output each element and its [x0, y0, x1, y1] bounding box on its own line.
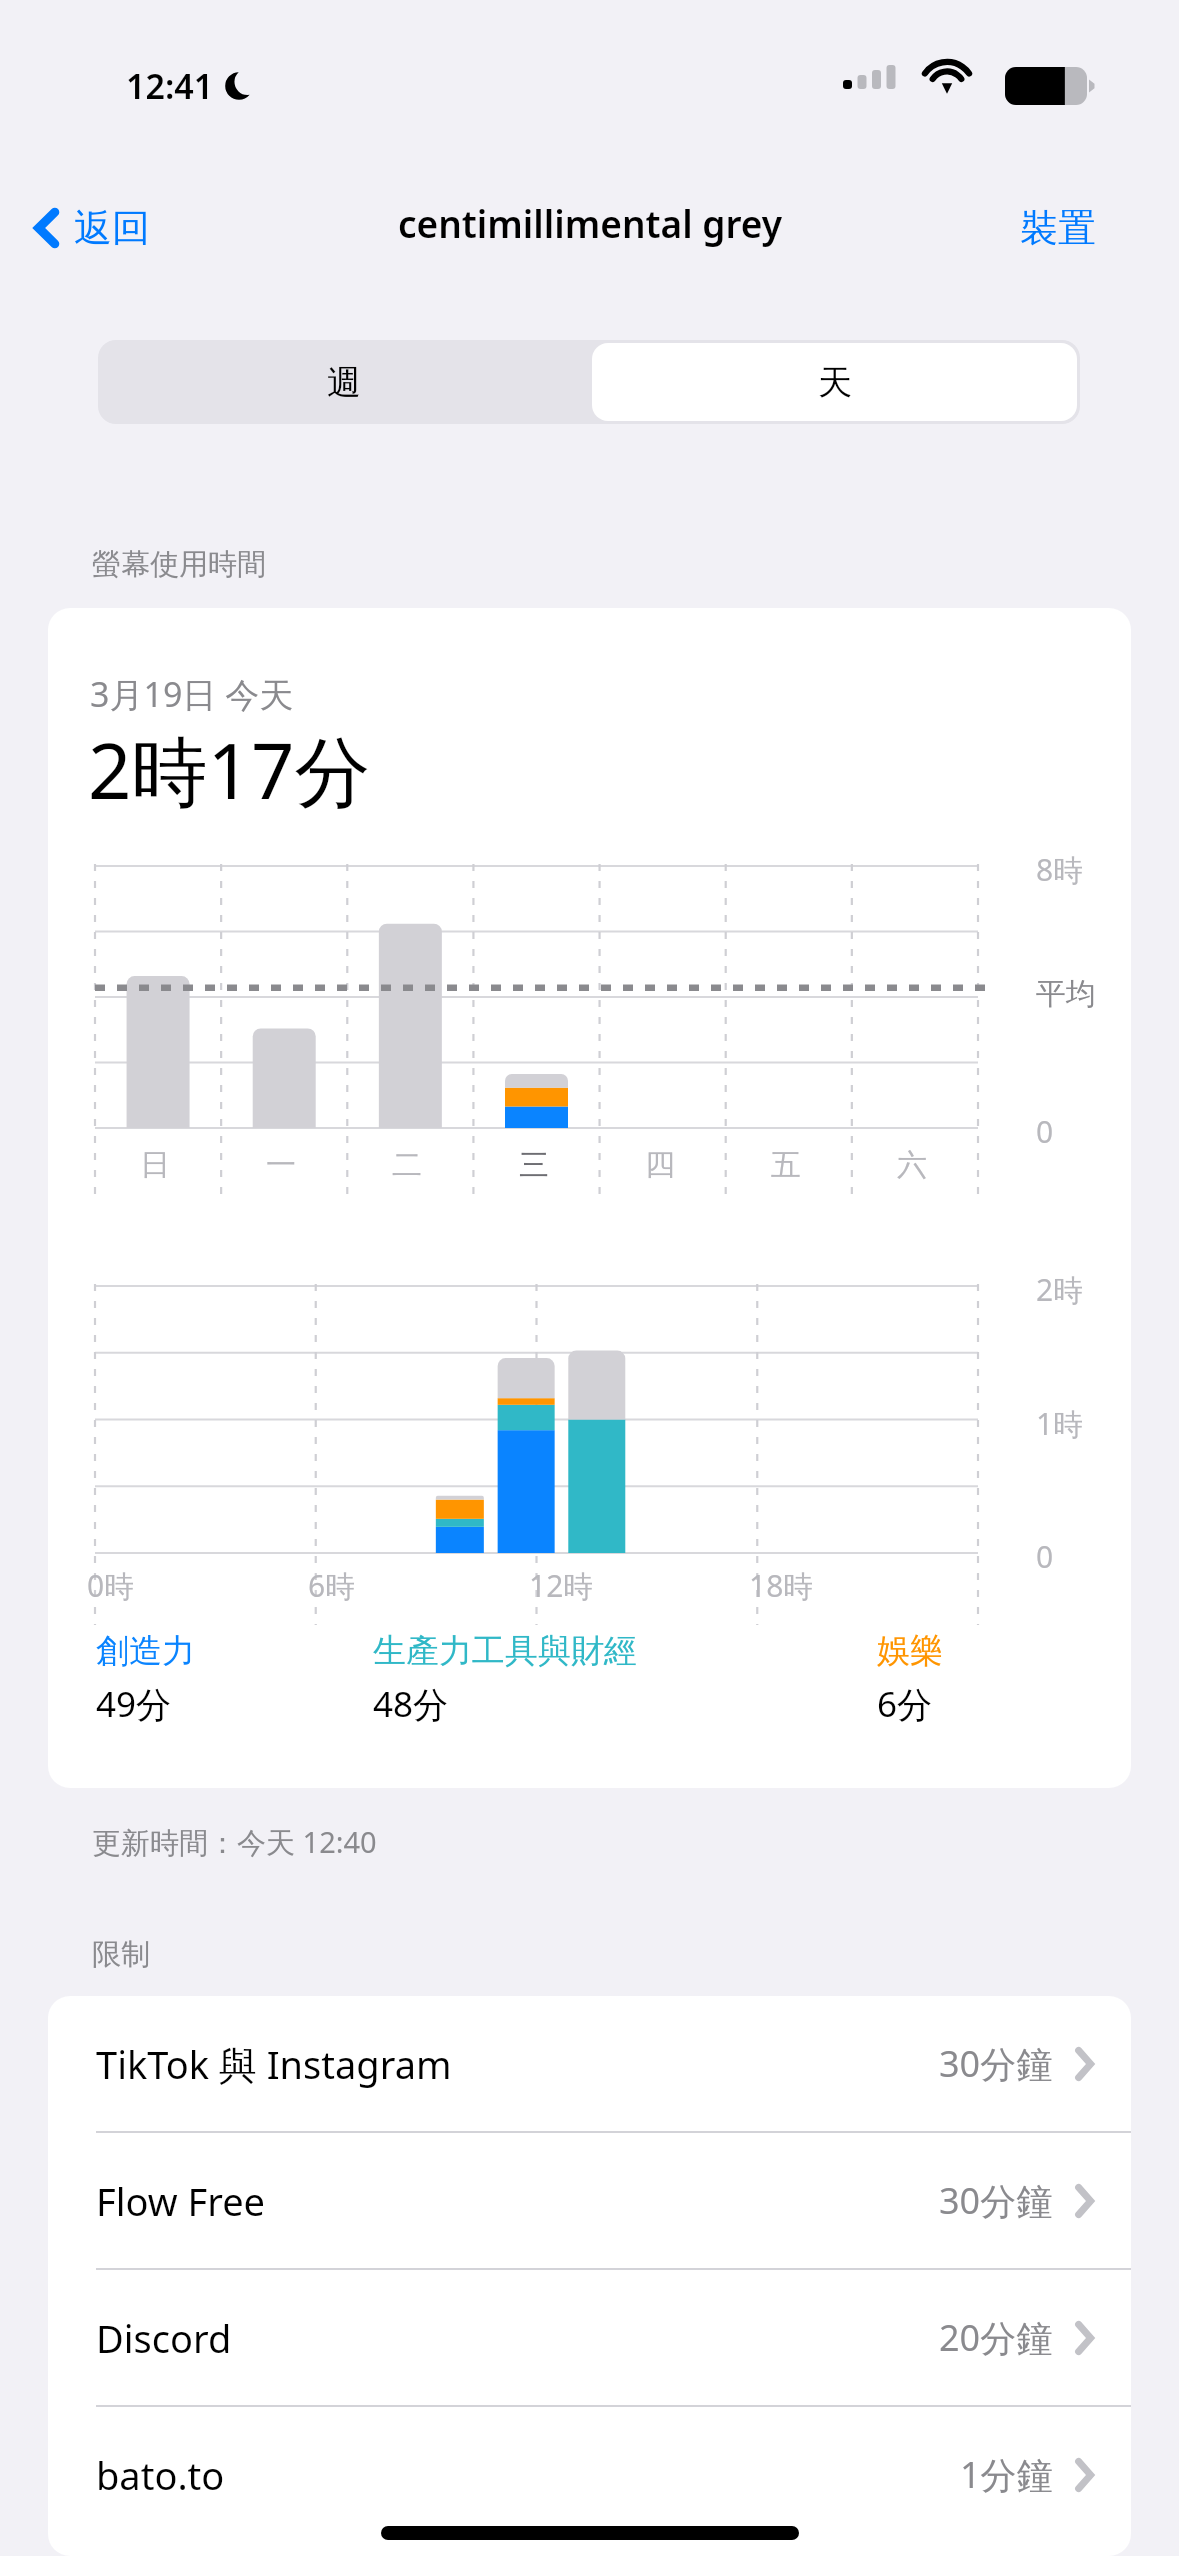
staticText: centimillimental grey [398, 198, 782, 248]
staticText: 6分 [877, 1680, 933, 1728]
staticText: TikTok 與 Instagram [96, 2038, 452, 2090]
button[interactable]: Flow Free [48, 2133, 1131, 2268]
staticText: 六 [897, 1146, 927, 1184]
button[interactable]: 生產力工具與財經 [373, 1630, 877, 1728]
staticText: 創造力 [96, 1630, 195, 1672]
staticText: 49分 [96, 1680, 172, 1728]
staticText: 0時 [87, 1565, 135, 1606]
other: 前往 [1075, 2047, 1095, 2081]
staticText: 1分鐘 [960, 2450, 1053, 2499]
staticText: 8時 [1036, 849, 1084, 890]
staticText: 6時 [308, 1565, 356, 1606]
button[interactable]: TikTok 與 Instagram [48, 1996, 1131, 2131]
staticText: 更新時間：今天 12:40 [92, 1822, 377, 1862]
button[interactable]: 裝置 [1010, 192, 1106, 264]
staticText: 生產力工具與財經 [373, 1630, 637, 1672]
staticText: 0 [1036, 1111, 1054, 1152]
staticText: 裝置 [1020, 204, 1096, 252]
staticText: 48分 [373, 1680, 449, 1728]
staticText: bato.to [96, 2449, 225, 2501]
button[interactable]: bato.to [48, 2407, 1131, 2542]
staticText: 限制 [92, 1936, 150, 1973]
staticText: 三 [519, 1146, 549, 1184]
staticText: 五 [771, 1146, 801, 1184]
staticText: 四 [645, 1146, 675, 1184]
staticText: 0 [1036, 1536, 1054, 1577]
staticText: 30分鐘 [939, 2039, 1053, 2088]
other: 前往 [1075, 2321, 1095, 2355]
staticText: 返回 [74, 204, 150, 252]
staticText: Flow Free [96, 2175, 266, 2227]
button[interactable]: 返回 [22, 192, 162, 264]
staticText: 1時 [1036, 1403, 1084, 1444]
staticText: 2時 [1036, 1269, 1084, 1310]
staticText: Discord [96, 2312, 232, 2364]
staticText: 30分鐘 [939, 2176, 1053, 2225]
button[interactable]: 娛樂 [877, 1630, 1091, 1728]
button[interactable]: 天 [592, 343, 1077, 421]
button[interactable]: 週 [98, 340, 589, 424]
staticText: 週 [327, 361, 361, 404]
button[interactable]: 創造力 [96, 1630, 373, 1728]
staticText: 12時 [529, 1565, 594, 1606]
staticText: 娛樂 [877, 1630, 943, 1672]
staticText: 天 [818, 361, 852, 404]
staticText: 螢幕使用時間 [92, 546, 266, 583]
staticText: 一 [266, 1146, 296, 1184]
staticText: 日 [140, 1146, 170, 1184]
staticText: 2時17分 [88, 718, 371, 822]
staticText: 20分鐘 [939, 2313, 1053, 2362]
staticText: 二 [392, 1146, 422, 1184]
button[interactable]: Discord [48, 2270, 1131, 2405]
other: 前往 [1075, 2458, 1095, 2492]
staticText: 18時 [749, 1565, 814, 1606]
staticText: 12:41 [126, 63, 214, 109]
staticText: 平均 [1036, 975, 1096, 1013]
staticText: 3月19日 今天 [90, 671, 294, 717]
other: 前往 [1075, 2184, 1095, 2218]
